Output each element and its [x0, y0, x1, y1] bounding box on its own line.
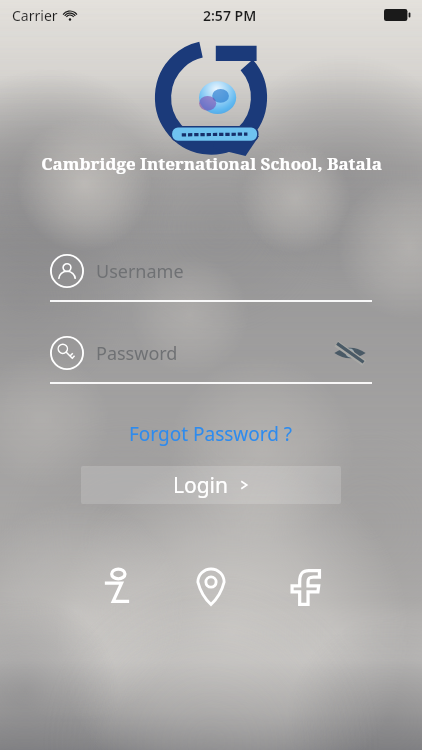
button[interactable]: Show password	[328, 333, 372, 373]
button[interactable]: Information	[90, 560, 144, 614]
staticText: Forgot Password ?	[129, 421, 293, 447]
button[interactable]: Forgot Password ?	[115, 416, 307, 452]
staticText: Cambridge International School, Batala	[41, 152, 382, 175]
staticText: Carrier	[12, 6, 58, 25]
staticText: 2:57 PM	[203, 6, 257, 25]
button[interactable]: Username	[50, 251, 372, 302]
staticText: Username	[96, 259, 184, 284]
button[interactable]: Login	[81, 466, 341, 504]
button[interactable]: Facebook	[278, 560, 332, 614]
button[interactable]: Password	[50, 333, 372, 384]
button[interactable]: Location	[184, 560, 238, 614]
staticText: Login	[173, 471, 229, 500]
staticText: Password	[96, 341, 178, 366]
